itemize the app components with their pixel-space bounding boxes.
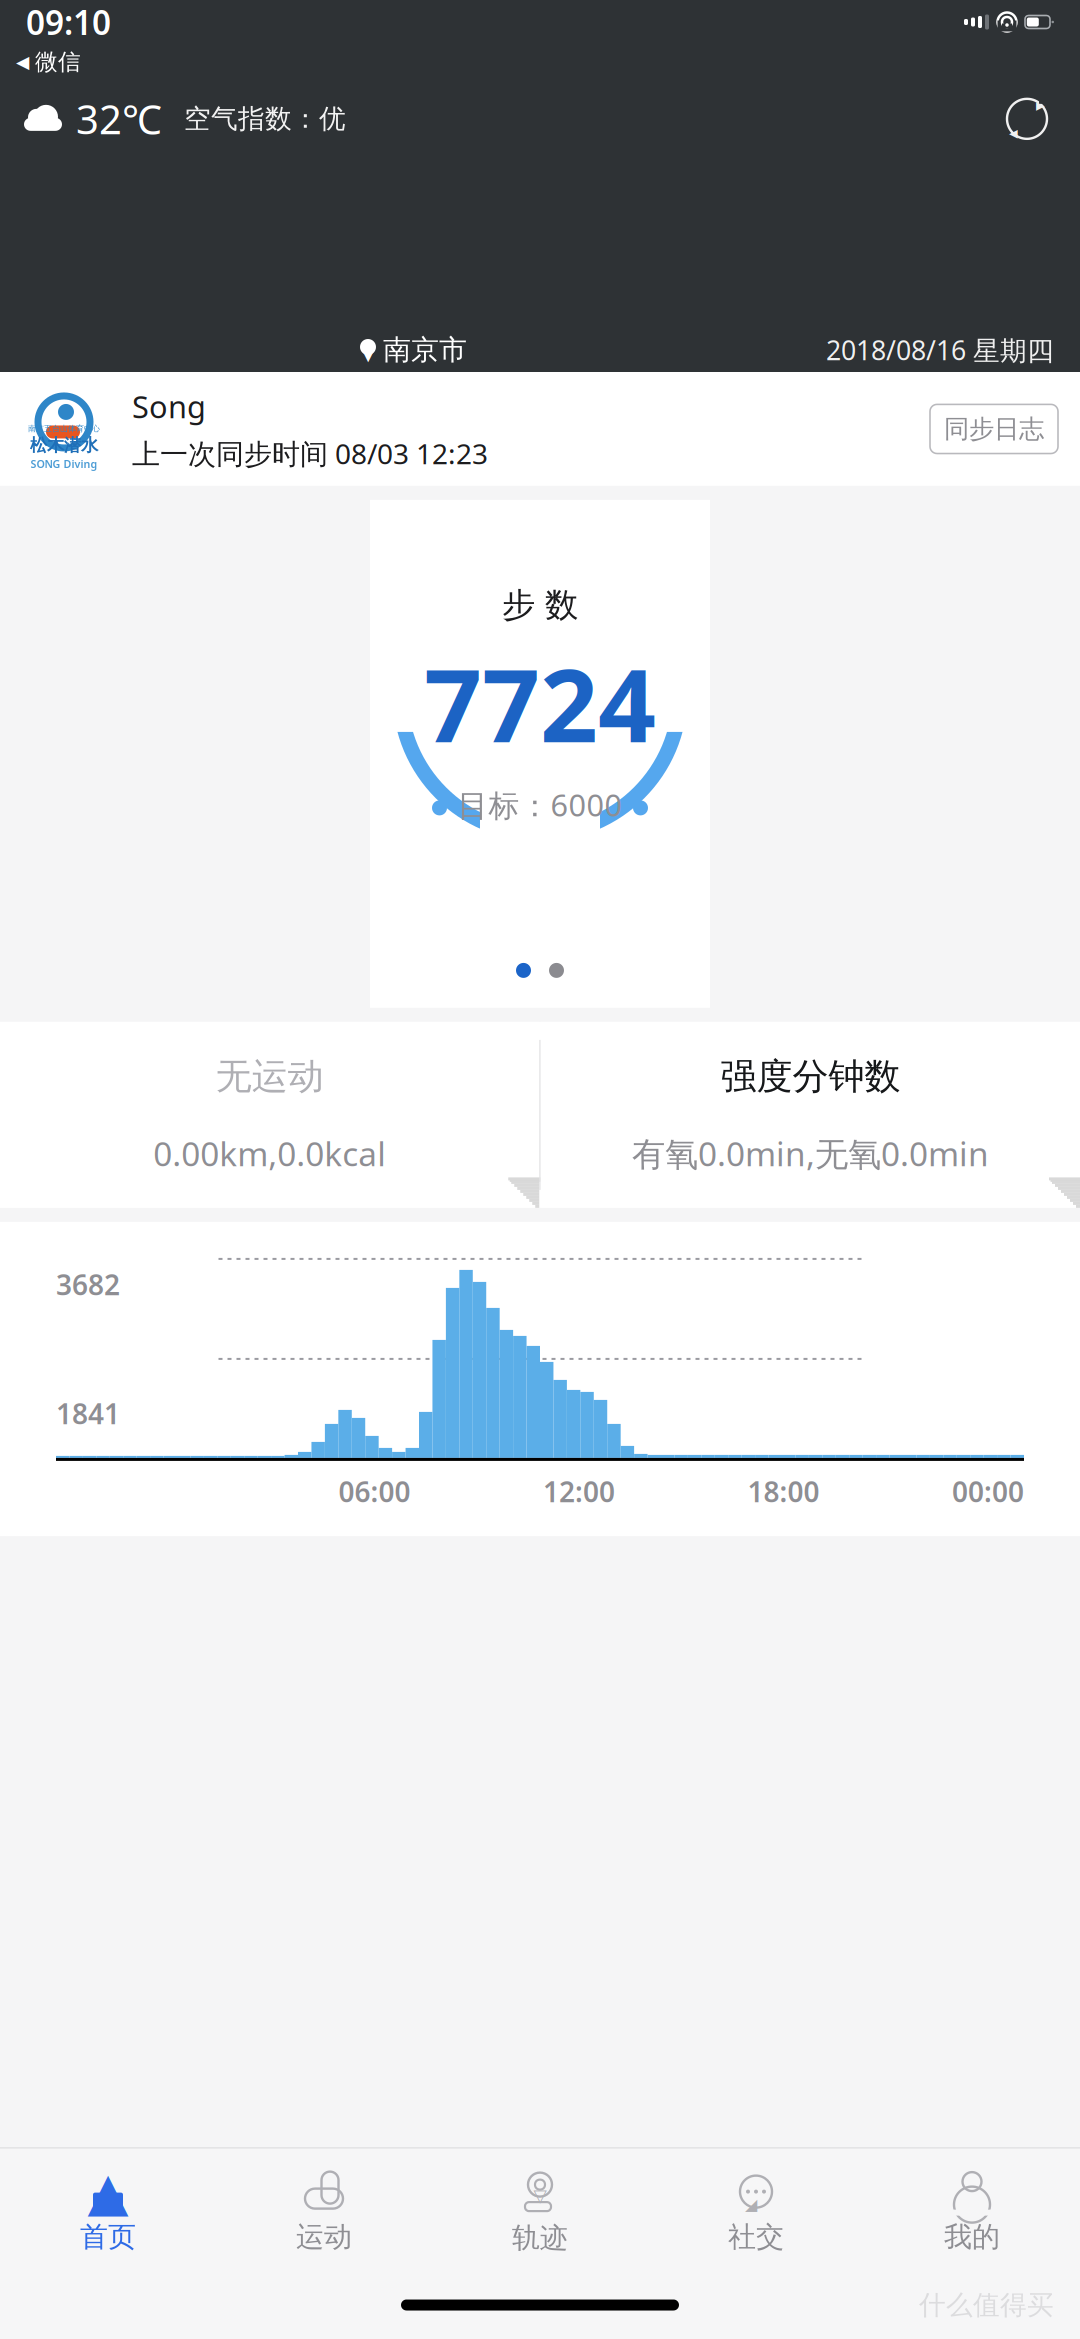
staticText: 7724	[424, 636, 656, 770]
staticText: 18:00	[747, 1473, 819, 1510]
staticText: 06:00	[338, 1473, 410, 1510]
staticText: 轨迹	[512, 2221, 568, 2255]
staticText: 南京五台山体育中心	[28, 424, 100, 433]
staticText: 空气指数：优	[184, 102, 346, 135]
staticText: 09:10	[26, 0, 111, 44]
staticText: 00:00	[952, 1473, 1024, 1510]
button[interactable]: 运动	[216, 2160, 432, 2264]
staticText: ◀	[16, 52, 29, 72]
staticText: 3682	[56, 1266, 120, 1303]
staticText: 32℃	[76, 92, 162, 145]
staticText: 无运动	[216, 1054, 324, 1099]
button[interactable]: 无运动	[0, 1022, 539, 1208]
staticText: 1841	[56, 1395, 120, 1432]
staticText: 社交	[728, 2220, 784, 2254]
button[interactable]: 同步日志	[930, 404, 1058, 453]
staticText: ▽	[533, 2186, 546, 2205]
staticText: ◂	[1009, 123, 1018, 142]
staticText: 运动	[296, 2220, 352, 2254]
staticText: 2018/08/16 星期四	[826, 332, 1054, 368]
staticText: 南京市	[383, 333, 467, 367]
staticText: ◢	[745, 2195, 757, 2214]
button[interactable]: ◢	[648, 2160, 864, 2264]
staticText: 有氧0.0min,无氧0.0min	[632, 1131, 989, 1175]
staticText: 步 数	[502, 585, 578, 626]
button[interactable]: 刷新	[1000, 92, 1080, 146]
button[interactable]: ▽	[432, 2159, 648, 2265]
staticText: SONG Diving	[30, 457, 97, 471]
staticText: ▲	[87, 2161, 128, 2222]
button[interactable]: 强度分钟数	[541, 1022, 1080, 1208]
staticText: 12:00	[543, 1473, 615, 1510]
button[interactable]: 我的	[864, 2160, 1080, 2264]
staticText: 松木潜水	[30, 434, 98, 456]
staticText: 上一次同步时间 08/03 12:23	[132, 435, 488, 472]
button[interactable]: ◀	[4, 44, 93, 80]
staticText: 目标：6000	[457, 784, 622, 825]
staticText: ▸	[1036, 95, 1045, 115]
staticText: 什么值得买	[919, 2289, 1054, 2321]
staticText: 强度分钟数	[720, 1054, 900, 1099]
staticText: 0.00km,0.0kcal	[153, 1131, 386, 1175]
staticText: 微信	[35, 48, 81, 76]
staticText: 首页	[80, 2220, 136, 2254]
staticText: ▼	[362, 347, 373, 364]
staticText: Song	[132, 386, 206, 427]
staticText: 我的	[944, 2220, 1000, 2254]
button[interactable]: ▲	[0, 2160, 216, 2264]
staticText: 同步日志	[944, 413, 1044, 444]
